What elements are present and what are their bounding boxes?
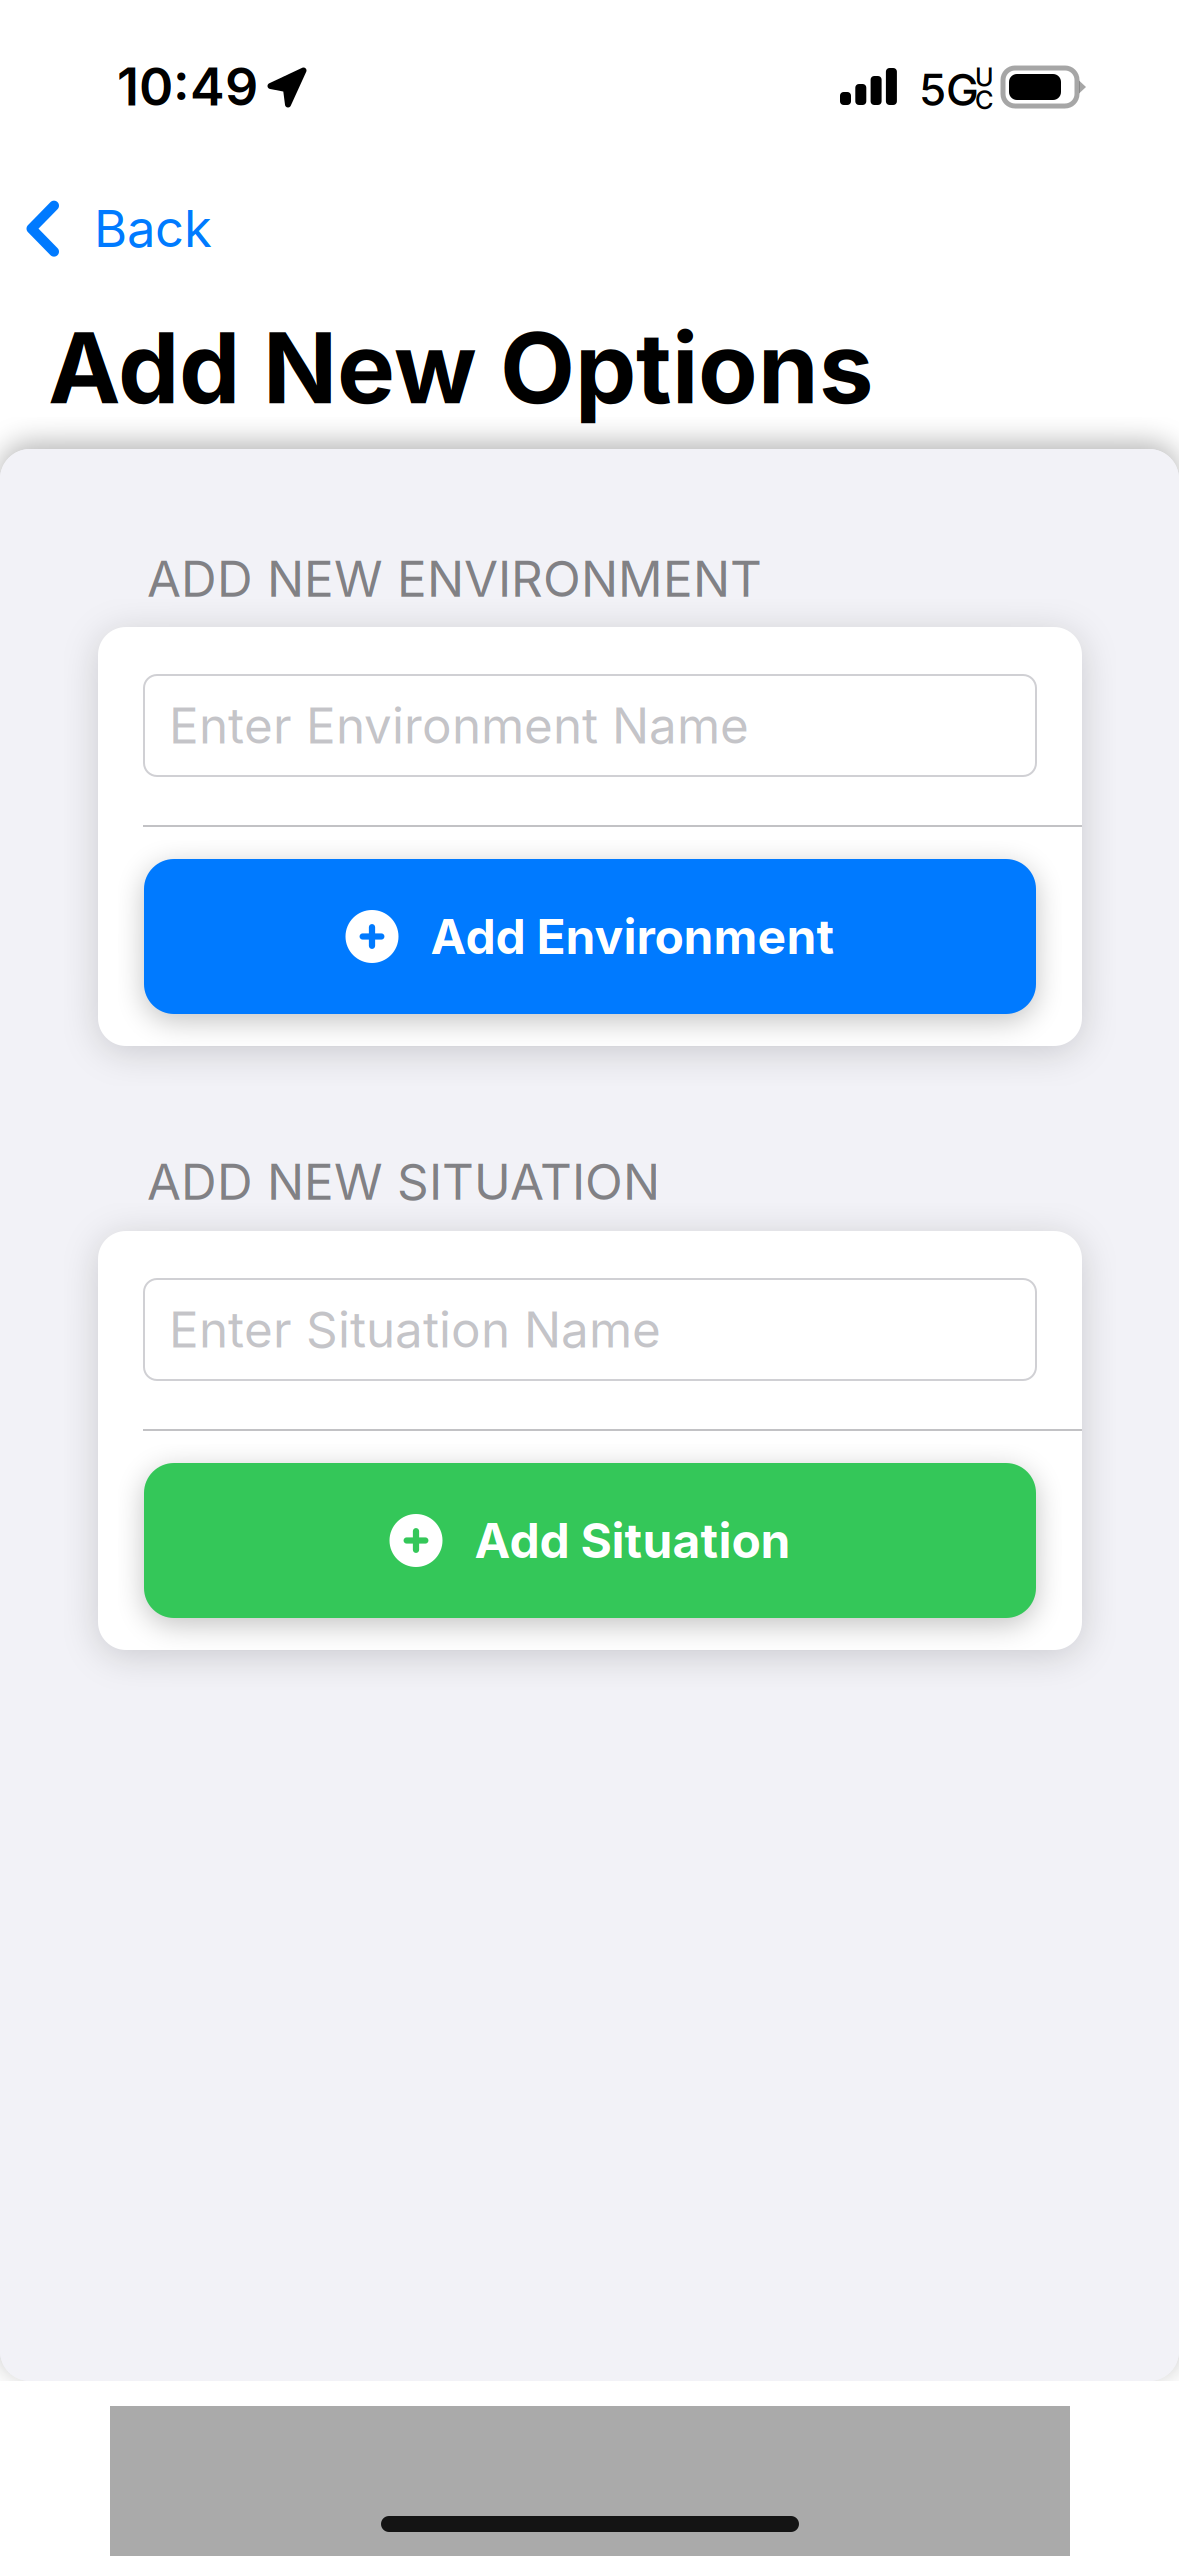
button[interactable]: Enter Environment Name [144,675,1036,776]
button[interactable]: Back [0,182,238,275]
button[interactable]: Add Environment [144,859,1036,1014]
staticText: U [975,62,993,93]
staticText: Add Situation [474,1511,790,1570]
staticText: ADD NEW ENVIRONMENT [147,549,762,609]
staticText: Back [94,198,212,259]
staticText: 5G [919,63,979,116]
staticText: Add New Options [48,309,874,427]
staticText: Add Environment [430,907,834,966]
staticText: Enter Situation Name [169,1300,661,1359]
button[interactable]: Enter Situation Name [144,1279,1036,1380]
staticText: ADD NEW SITUATION [147,1152,660,1212]
staticText: 10:49 [117,55,258,118]
staticText: C [975,85,994,115]
staticText: Enter Environment Name [169,696,749,755]
button[interactable]: Add Situation [144,1463,1036,1618]
